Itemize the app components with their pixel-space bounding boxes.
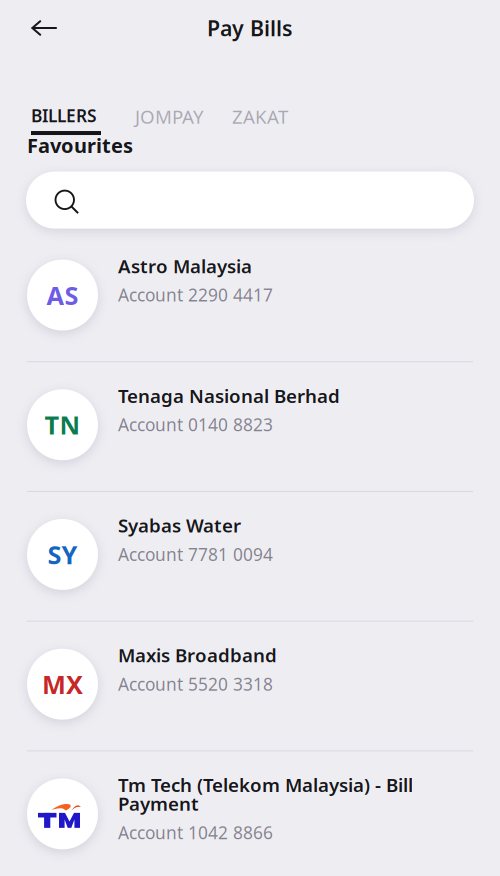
button[interactable]: AS [0, 233, 500, 361]
button[interactable]: JOMPAY [101, 104, 204, 129]
staticText: Account 5520 3318 [118, 672, 273, 695]
staticText: Account 2290 4417 [118, 283, 273, 306]
staticText: TN [44, 408, 80, 442]
staticText: Account 1042 8866 [118, 821, 273, 844]
staticText: AS [46, 278, 78, 312]
button[interactable]: Search billers [26, 172, 474, 229]
button[interactable]: Tm Tech (Telekom Malaysia) - Bill Paymen… [0, 751, 500, 876]
staticText: JOMPAY [135, 104, 204, 129]
staticText: Favourites [27, 132, 133, 159]
staticText: Syabas Water [118, 513, 241, 538]
staticText: BILLERS [31, 104, 97, 127]
staticText: Account 7781 0094 [118, 543, 273, 566]
staticText: Astro Malaysia [118, 254, 252, 278]
staticText: MX [42, 667, 83, 701]
staticText: Tm Tech (Telekom Malaysia) - Bill Paymen… [118, 772, 413, 816]
button[interactable]: MX [0, 622, 500, 750]
staticText: SY [47, 538, 77, 571]
button[interactable]: SY [0, 492, 500, 621]
staticText: Maxis Broadband [118, 643, 277, 667]
button[interactable]: TN [0, 362, 500, 491]
button[interactable]: ZAKAT [204, 104, 288, 129]
staticText: Pay Bills [207, 14, 293, 42]
staticText: ZAKAT [232, 104, 288, 129]
button[interactable]: Back [0, 10, 58, 46]
button[interactable]: BILLERS [0, 104, 101, 135]
staticText: Tenaga Nasional Berhad [118, 383, 340, 408]
staticText: Account 0140 8823 [118, 413, 273, 436]
